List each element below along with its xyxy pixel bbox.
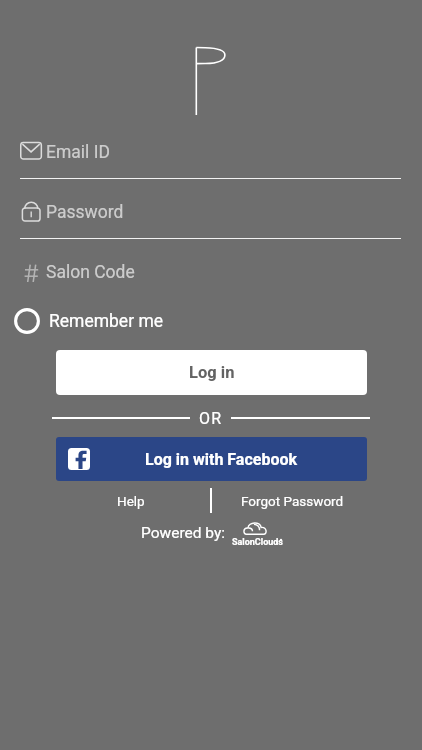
staticText: Email ID [46, 142, 110, 163]
staticText: Remember me [49, 311, 164, 332]
staticText: Password [46, 202, 124, 223]
button[interactable]: Forgot Password [236, 487, 348, 515]
staticText: Salon Code [46, 262, 135, 283]
button[interactable]: Log in with Facebook [56, 437, 367, 481]
button[interactable]: Help [103, 487, 159, 515]
button[interactable]: Log in [56, 350, 367, 395]
staticText: SalonClouds [232, 537, 283, 548]
button[interactable]: Email ID [20, 131, 401, 173]
staticText: OR [199, 409, 223, 428]
staticText: Forgot Password [241, 493, 344, 509]
staticText: Log in [189, 363, 235, 382]
other: App logo [180, 40, 240, 125]
staticText: Log in with Facebook [145, 450, 297, 469]
staticText: Help [117, 493, 145, 509]
staticText: Powered by: [141, 524, 226, 542]
button[interactable]: Password [20, 191, 401, 233]
button[interactable]: Salon Code [20, 251, 401, 293]
button[interactable]: Remember me [8, 303, 174, 339]
